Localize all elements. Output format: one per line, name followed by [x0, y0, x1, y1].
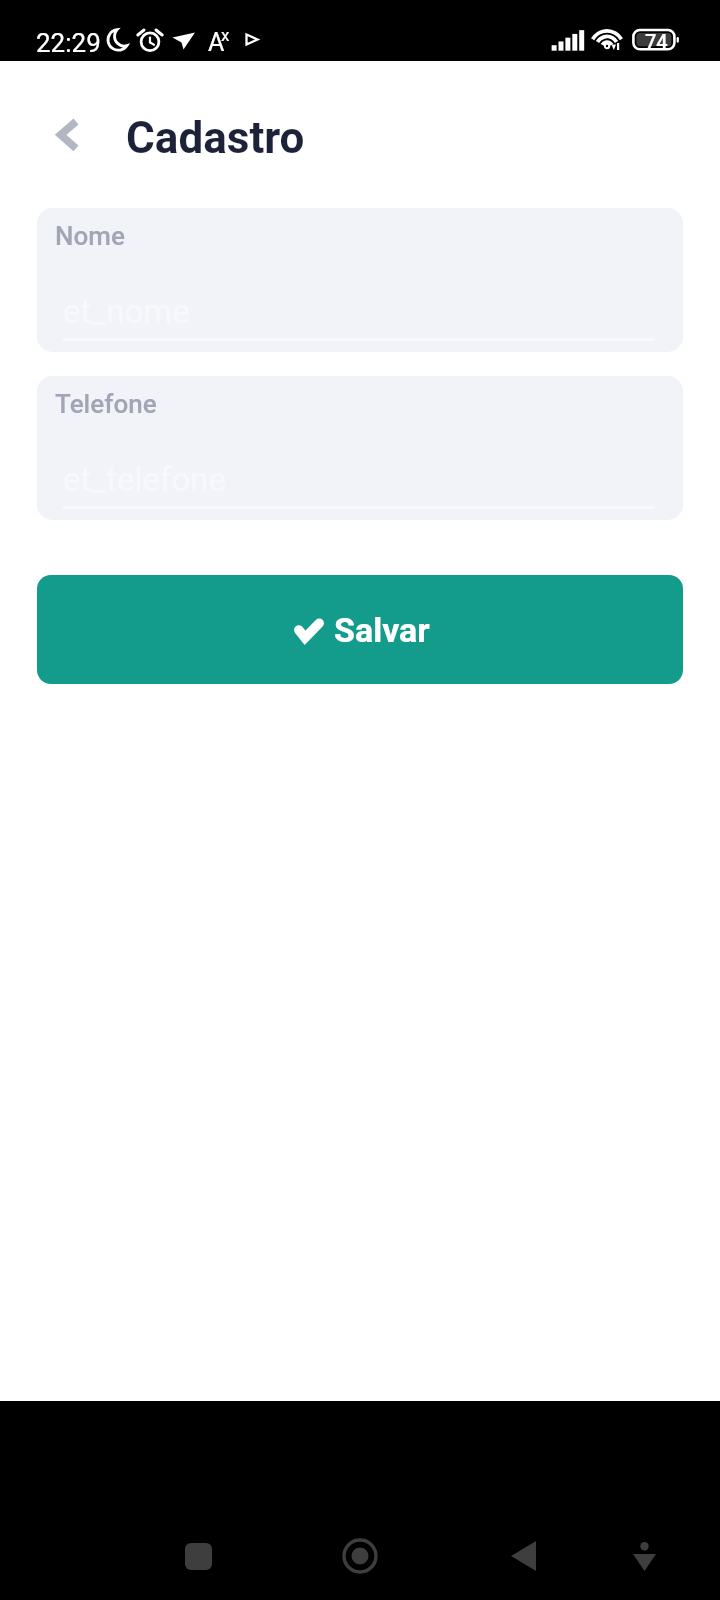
staticText: Salvar [334, 610, 430, 650]
staticText: Cadastro [126, 112, 305, 164]
staticText: 74 [645, 30, 668, 53]
button[interactable]: Nome [37, 208, 683, 352]
button[interactable]: Recentes [162, 1520, 234, 1592]
staticText: Nome [55, 221, 125, 251]
button[interactable]: Início [324, 1520, 396, 1592]
button[interactable]: Ocultar teclado [608, 1520, 680, 1592]
staticText: A [208, 28, 225, 57]
staticText: Telefone [55, 389, 157, 419]
button[interactable]: Salvar [37, 575, 683, 684]
staticText: 22:29 [36, 28, 101, 58]
button[interactable]: Voltar [487, 1520, 559, 1592]
button[interactable]: Voltar [42, 110, 90, 158]
button[interactable]: Telefone [37, 376, 683, 520]
staticText: x [221, 25, 230, 45]
